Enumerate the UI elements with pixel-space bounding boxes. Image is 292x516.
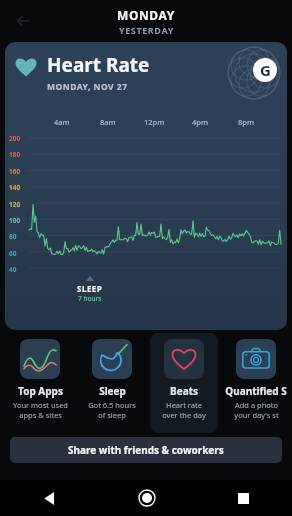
staticText: Sleep — [99, 384, 126, 398]
staticText: 100 — [9, 216, 21, 225]
staticText: 180 — [9, 150, 21, 159]
staticText: 12pm — [144, 117, 165, 127]
staticText: 160 — [9, 167, 21, 176]
button[interactable]: Share with friends & coworkers — [10, 437, 282, 463]
staticText: 140 — [9, 183, 21, 192]
button[interactable]: Home — [98, 480, 195, 516]
button[interactable]: Quantified S — [222, 333, 290, 433]
button[interactable]: Beats — [150, 333, 218, 433]
staticText: YESTERDAY — [119, 24, 174, 36]
staticText: MONDAY, NOV 27 — [47, 81, 128, 93]
button[interactable]: Heart Rate — [5, 42, 287, 330]
staticText: 8pm — [238, 117, 255, 127]
staticText: 40 — [9, 265, 17, 274]
button[interactable]: Recent apps — [195, 480, 292, 516]
staticText: SLEEP — [77, 283, 103, 294]
staticText: 8am — [100, 117, 116, 127]
staticText: Quantified S — [225, 384, 287, 398]
staticText: 4am — [54, 117, 70, 127]
staticText: 60 — [9, 249, 17, 258]
staticText: Beats — [170, 384, 198, 398]
staticText: 7 hours — [78, 294, 102, 303]
button[interactable]: Top Apps — [6, 333, 74, 433]
staticText: 120 — [9, 200, 21, 209]
button[interactable]: Gyroscope app — [253, 58, 277, 82]
staticText: G — [260, 60, 271, 80]
button[interactable]: Back — [6, 3, 42, 39]
button[interactable]: Sleep — [78, 333, 146, 433]
staticText: 80 — [9, 232, 17, 241]
staticText: Heart Rate — [47, 52, 150, 78]
staticText: 200 — [9, 134, 21, 143]
staticText: Add a photo your day's st — [234, 400, 279, 420]
staticText: Top Apps — [18, 384, 63, 398]
staticText: MONDAY — [117, 7, 175, 23]
staticText: Share with friends & coworkers — [68, 443, 224, 457]
staticText: 4pm — [192, 117, 209, 127]
button[interactable]: Back — [0, 480, 98, 516]
staticText: Heart rate over the day — [162, 400, 206, 420]
staticText: Got 6.5 hours of sleep — [88, 400, 136, 420]
staticText: Your most used apps & sites — [13, 400, 68, 420]
